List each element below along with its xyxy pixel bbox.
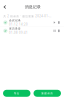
staticText: 共 2 段录音 · 最近更新 2024-01-12 (3, 14, 53, 18)
staticText: 导出 (14, 92, 20, 95)
staticText: 新建录音 (41, 92, 53, 95)
staticText: 消息记录 (25, 4, 41, 9)
staticText: 会议记录 (9, 19, 21, 22)
button[interactable]: 导出 (3, 90, 30, 97)
button[interactable]: Back (1, 0, 8, 13)
staticText: 01-08 09:41 (9, 31, 28, 34)
staticText: 01-12 14:20 (9, 23, 28, 26)
button[interactable]: 采访录音 (0, 27, 64, 35)
staticText: 采访录音 (9, 27, 21, 30)
button[interactable]: 新建录音 (33, 90, 61, 97)
button[interactable]: 会议记录 (0, 18, 64, 26)
